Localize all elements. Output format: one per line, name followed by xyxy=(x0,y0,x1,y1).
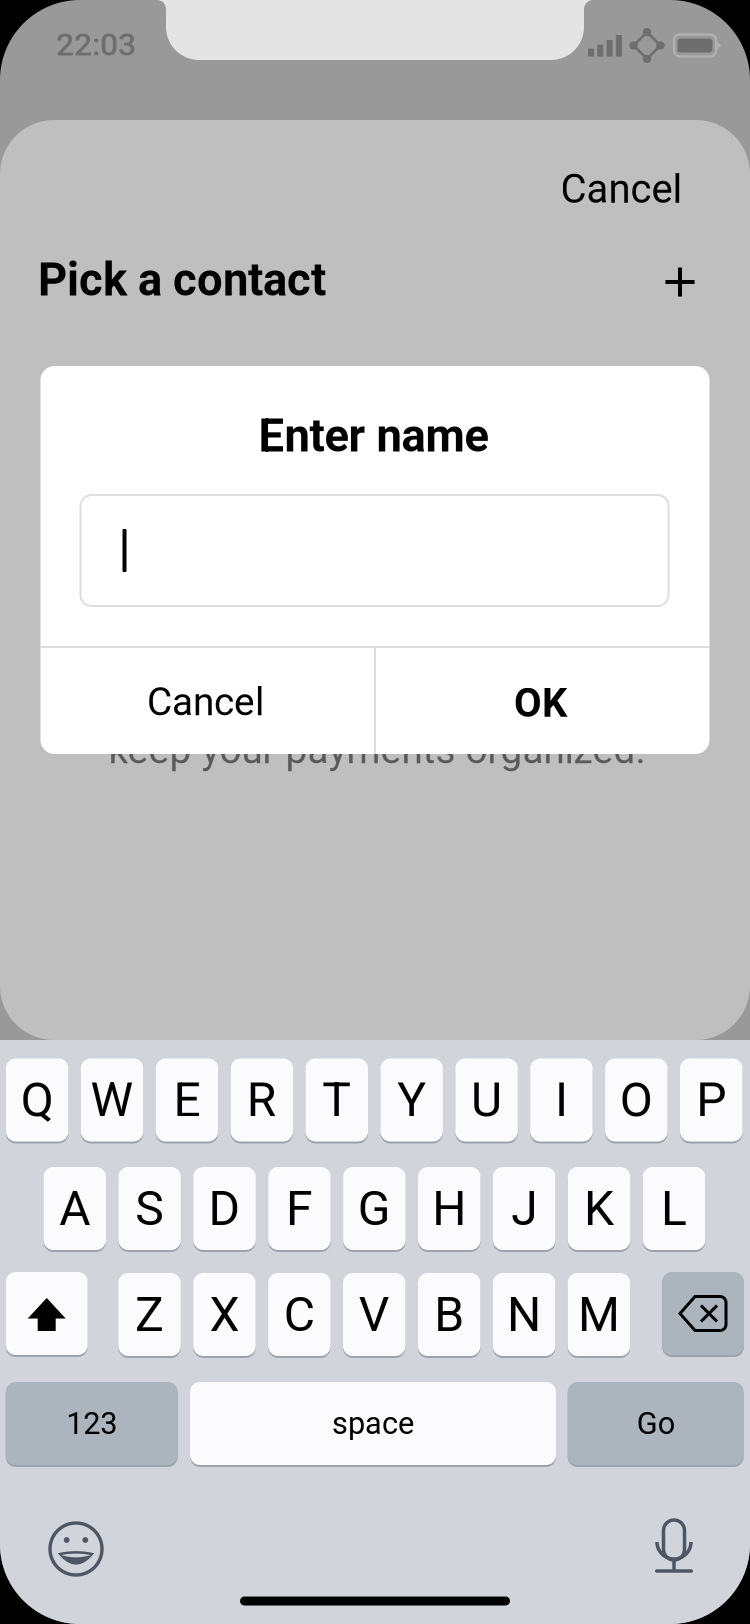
button[interactable]: Cancel xyxy=(38,648,372,755)
button[interactable]: B xyxy=(418,1272,480,1357)
button[interactable]: C xyxy=(268,1272,331,1357)
button[interactable]: I xyxy=(530,1057,593,1142)
staticText: 22:03 xyxy=(56,26,136,63)
button[interactable]: Add contact xyxy=(648,250,712,314)
button[interactable]: Emoji xyxy=(36,1509,116,1589)
staticText: Go xyxy=(637,1405,675,1441)
staticText: 123 xyxy=(66,1405,117,1441)
staticText: L xyxy=(661,1180,687,1237)
button[interactable]: S xyxy=(118,1166,181,1251)
button[interactable]: Y xyxy=(380,1057,443,1142)
button[interactable]: X xyxy=(193,1272,256,1357)
staticText: I xyxy=(555,1072,568,1128)
button[interactable]: M xyxy=(568,1272,630,1357)
staticText: S xyxy=(135,1180,164,1237)
staticText: OK xyxy=(514,680,567,726)
button[interactable]: Cancel xyxy=(542,157,682,221)
staticText: K xyxy=(584,1180,614,1237)
button[interactable]: 123 xyxy=(6,1381,178,1466)
button[interactable]: Delete xyxy=(662,1271,744,1356)
staticText: J xyxy=(511,1180,537,1237)
staticText: Cancel xyxy=(147,679,264,725)
button[interactable]: Go xyxy=(568,1381,744,1466)
staticText: G xyxy=(358,1180,391,1237)
staticText: T xyxy=(322,1072,351,1128)
button[interactable]: R xyxy=(231,1057,293,1142)
button[interactable]: OK xyxy=(373,649,707,756)
button[interactable]: D xyxy=(193,1166,256,1251)
staticText: A xyxy=(59,1180,90,1237)
staticText: Q xyxy=(21,1072,54,1128)
button[interactable]: H xyxy=(418,1166,480,1251)
button[interactable]: Q xyxy=(6,1057,68,1142)
staticText: Pick a contact xyxy=(38,253,326,306)
staticText: V xyxy=(359,1286,390,1343)
button[interactable]: W xyxy=(81,1057,143,1142)
button[interactable]: P xyxy=(680,1057,742,1142)
button[interactable]: G xyxy=(343,1166,406,1251)
staticText: X xyxy=(209,1286,239,1343)
staticText: F xyxy=(286,1180,313,1237)
button[interactable]: space xyxy=(190,1381,556,1466)
button[interactable]: N xyxy=(493,1272,555,1357)
button[interactable]: Dictate xyxy=(634,1509,714,1589)
button[interactable]: E xyxy=(156,1057,218,1142)
staticText: Cancel xyxy=(560,166,682,212)
staticText: keep your payments organized. xyxy=(108,727,645,773)
staticText: space xyxy=(332,1405,414,1441)
button[interactable]: A xyxy=(43,1166,106,1251)
button[interactable]: V xyxy=(343,1272,405,1357)
button[interactable]: K xyxy=(568,1166,630,1251)
button[interactable]: F xyxy=(268,1166,331,1251)
staticText: R xyxy=(247,1072,277,1128)
button[interactable]: T xyxy=(305,1057,368,1142)
staticText: W xyxy=(91,1072,134,1128)
staticText: Enter name xyxy=(258,409,488,462)
staticText: D xyxy=(209,1180,241,1237)
staticText: E xyxy=(173,1072,200,1128)
staticText: P xyxy=(696,1072,726,1128)
button[interactable]: O xyxy=(605,1057,668,1142)
button[interactable]: L xyxy=(643,1166,705,1251)
staticText: Z xyxy=(135,1286,164,1343)
staticText: U xyxy=(471,1072,502,1128)
button[interactable]: Z xyxy=(118,1272,181,1357)
button[interactable]: Shift xyxy=(6,1271,88,1356)
button[interactable]: U xyxy=(455,1057,518,1142)
staticText: N xyxy=(507,1286,541,1343)
staticText: H xyxy=(432,1180,466,1237)
button[interactable]: J xyxy=(493,1166,555,1251)
staticText: Y xyxy=(397,1072,426,1128)
staticText: O xyxy=(620,1072,653,1128)
staticText: M xyxy=(578,1286,620,1343)
staticText: B xyxy=(434,1286,464,1343)
staticText: C xyxy=(284,1286,315,1343)
